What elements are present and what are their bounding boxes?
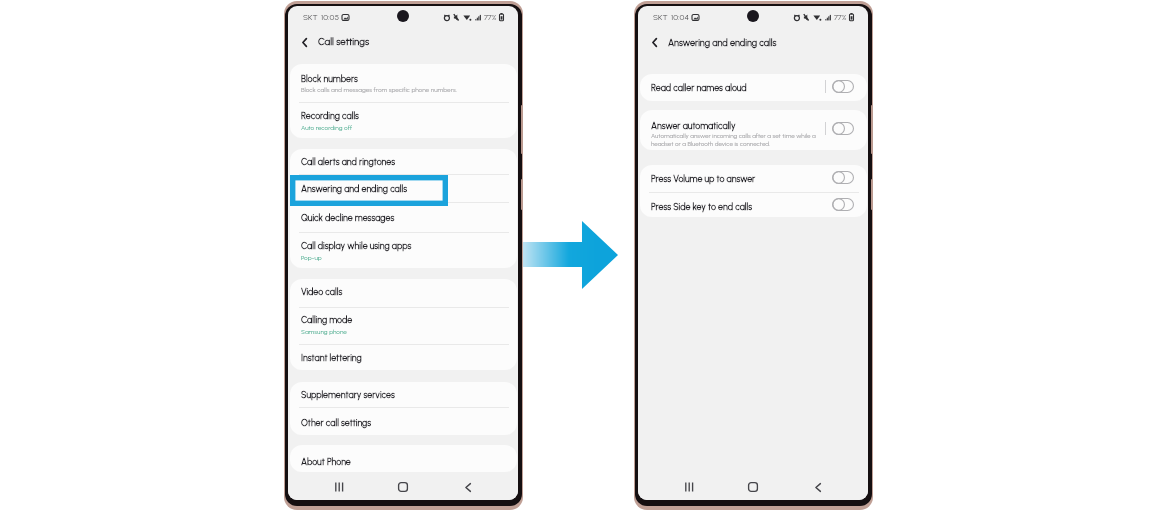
- button[interactable]: Other call settings: [290, 408, 517, 435]
- staticText: Supplementary services: [301, 390, 395, 401]
- button[interactable]: Recording calls: [290, 102, 517, 137]
- staticText: 10:05: [321, 12, 339, 22]
- staticText: Call alerts and ringtones: [301, 157, 396, 168]
- button[interactable]: Instant lettering: [290, 345, 517, 370]
- button[interactable]: Calling mode: [290, 307, 517, 344]
- staticText: Call settings: [318, 36, 370, 48]
- staticText: 77%: [484, 13, 497, 22]
- button[interactable]: Block numbers: [290, 64, 517, 102]
- button[interactable]: Press Volume up to answer: [640, 165, 867, 193]
- staticText: Recording calls: [301, 111, 359, 122]
- staticText: About Phone: [301, 457, 351, 468]
- button[interactable]: Toggle: [832, 80, 854, 93]
- staticText: Block calls and messages from specific p…: [301, 86, 457, 94]
- button[interactable]: Video calls: [290, 279, 517, 307]
- staticText: Other call settings: [301, 418, 372, 429]
- staticText: 77%: [834, 13, 847, 22]
- button[interactable]: Home: [740, 474, 766, 500]
- button[interactable]: About Phone: [290, 445, 517, 472]
- staticText: Call display while using apps: [301, 241, 412, 252]
- staticText: Instant lettering: [301, 353, 362, 364]
- button[interactable]: Back: [805, 474, 831, 500]
- staticText: Answer automatically: [651, 121, 736, 132]
- button[interactable]: Toggle: [832, 171, 854, 184]
- staticText: Read caller names aloud: [651, 83, 747, 94]
- staticText: Calling mode: [301, 315, 353, 326]
- staticText: Block numbers: [301, 74, 358, 85]
- staticText: 10:04: [671, 12, 689, 22]
- button[interactable]: Home: [390, 474, 416, 500]
- staticText: Quick decline messages: [301, 213, 395, 224]
- staticText: Answering and ending calls: [301, 184, 408, 195]
- staticText: Press Volume up to answer: [651, 174, 756, 185]
- button[interactable]: Navigate up: [638, 28, 868, 56]
- staticText: Press Side key to end calls: [651, 202, 753, 213]
- staticText: Samsung phone: [301, 328, 347, 336]
- button[interactable]: Call display while using apps: [290, 232, 517, 268]
- staticText: Automatically answer incoming calls afte…: [651, 132, 823, 148]
- button[interactable]: Call alerts and ringtones: [290, 149, 517, 174]
- staticText: Answering and ending calls: [668, 37, 777, 48]
- button[interactable]: Navigate up: [288, 28, 518, 56]
- button[interactable]: Press Side key to end calls: [640, 193, 867, 217]
- button[interactable]: Toggle: [832, 122, 854, 135]
- button[interactable]: Read caller names aloud: [640, 74, 867, 101]
- button[interactable]: Quick decline messages: [290, 203, 517, 232]
- button[interactable]: Answer automatically: [640, 110, 867, 150]
- staticText: SKT: [303, 12, 318, 22]
- button[interactable]: Supplementary services: [290, 382, 517, 408]
- button[interactable]: Answering and ending calls: [290, 174, 517, 203]
- staticText: Auto recording off: [301, 124, 353, 132]
- button[interactable]: Recent apps: [676, 474, 702, 500]
- button[interactable]: Back: [455, 474, 481, 500]
- staticText: Pop-up: [301, 254, 322, 262]
- button[interactable]: Toggle: [832, 198, 854, 211]
- staticText: SKT: [653, 12, 668, 22]
- button[interactable]: Recent apps: [326, 474, 352, 500]
- staticText: Video calls: [301, 287, 343, 298]
